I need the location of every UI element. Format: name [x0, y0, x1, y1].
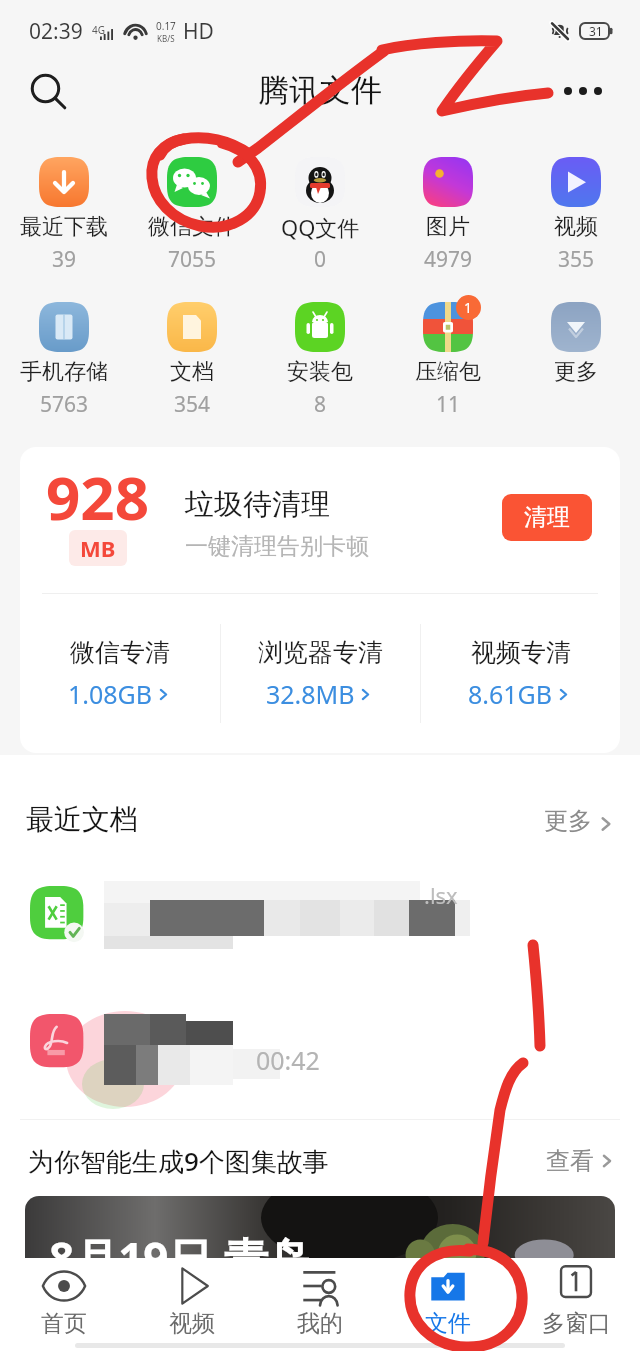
staticText: 4G [92, 23, 105, 37]
button[interactable]: 文档 [128, 299, 256, 420]
staticText: .lsx [424, 880, 458, 910]
staticText: 文件 [425, 1309, 471, 1338]
staticText: 微信专清 [70, 637, 170, 668]
staticText: 0.17 [156, 19, 176, 33]
staticText: 39 [52, 245, 77, 274]
staticText: 视频 [169, 1309, 215, 1338]
staticText: 32.8MB [266, 677, 355, 711]
staticText: 7055 [168, 245, 217, 274]
staticText: 腾讯文件 [258, 71, 382, 110]
button[interactable]: 视频专清 [421, 594, 620, 753]
staticText: 00:42 [256, 1043, 320, 1077]
button[interactable]: 图片 [384, 154, 512, 275]
staticText: 355 [558, 245, 595, 274]
button[interactable]: 视频 [512, 154, 640, 275]
staticText: 视频 [554, 213, 598, 241]
staticText: 最近文档 [26, 802, 138, 837]
staticText: 最近下载 [20, 213, 108, 241]
staticText: KB/S [157, 33, 175, 44]
staticText: 1.08GB [68, 677, 153, 711]
button[interactable]: 更多 [512, 299, 640, 420]
button[interactable]: 查看 [546, 1146, 618, 1176]
button[interactable]: More options [551, 59, 615, 123]
staticText: 图片 [426, 213, 470, 241]
staticText: 一键清理告别卡顿 [185, 532, 369, 561]
staticText: 更多 [554, 358, 598, 386]
staticText: HD [183, 17, 214, 46]
button[interactable]: 最近下载 [0, 154, 128, 275]
staticText: 8.61GB [468, 677, 553, 711]
button[interactable]: 更多 [544, 807, 618, 837]
staticText: 清理 [524, 503, 570, 532]
button[interactable]: QQ文件 [256, 154, 384, 275]
staticText: 31 [589, 23, 603, 39]
button[interactable]: 多窗口 [512, 1258, 640, 1338]
button[interactable]: 浏览器专清 [221, 594, 420, 753]
staticText: 浏览器专清 [258, 637, 383, 668]
staticText: MB [80, 533, 116, 563]
staticText: 1 [464, 298, 473, 317]
button[interactable]: 视频 [128, 1258, 256, 1338]
staticText: 安装包 [287, 358, 353, 386]
staticText: 8 [314, 390, 327, 419]
staticText: 更多 [544, 806, 592, 836]
button[interactable]: 微信专清 [20, 594, 220, 753]
staticText: 354 [174, 390, 211, 419]
button[interactable]: 00:42 [0, 979, 640, 1107]
staticText: 5763 [40, 390, 89, 419]
staticText: QQ文件 [281, 212, 360, 242]
staticText: 928 [46, 456, 149, 538]
button[interactable]: 手机存储 [0, 299, 128, 420]
staticText: 11 [436, 390, 461, 419]
staticText: 查看 [546, 1146, 594, 1176]
button[interactable]: 文件 [384, 1258, 512, 1338]
staticText: 压缩包 [415, 358, 481, 386]
staticText: 文档 [170, 358, 214, 386]
staticText: 8月19日 青岛 [49, 1228, 312, 1258]
button[interactable]: 清理 [502, 494, 592, 541]
button[interactable]: 微信文件 [128, 154, 256, 275]
staticText: 我的 [297, 1309, 343, 1338]
staticText: 0 [314, 245, 327, 274]
staticText: 为你智能生成9个图集故事 [28, 1143, 329, 1179]
button[interactable]: Search [16, 59, 80, 123]
button[interactable]: 安装包 [256, 299, 384, 420]
button[interactable]: 首页 [0, 1258, 128, 1338]
staticText: 视频专清 [471, 637, 571, 668]
staticText: 02:39 [29, 17, 83, 46]
staticText: 手机存储 [20, 358, 108, 386]
staticText: 微信文件 [148, 213, 236, 241]
button[interactable]: 我的 [256, 1258, 384, 1338]
button[interactable]: 1 [384, 299, 512, 420]
button[interactable]: .lsx [0, 851, 640, 979]
staticText: 首页 [41, 1309, 87, 1338]
staticText: 垃圾待清理 [185, 486, 330, 523]
staticText: 多窗口 [542, 1309, 611, 1338]
staticText: 4979 [424, 245, 473, 274]
